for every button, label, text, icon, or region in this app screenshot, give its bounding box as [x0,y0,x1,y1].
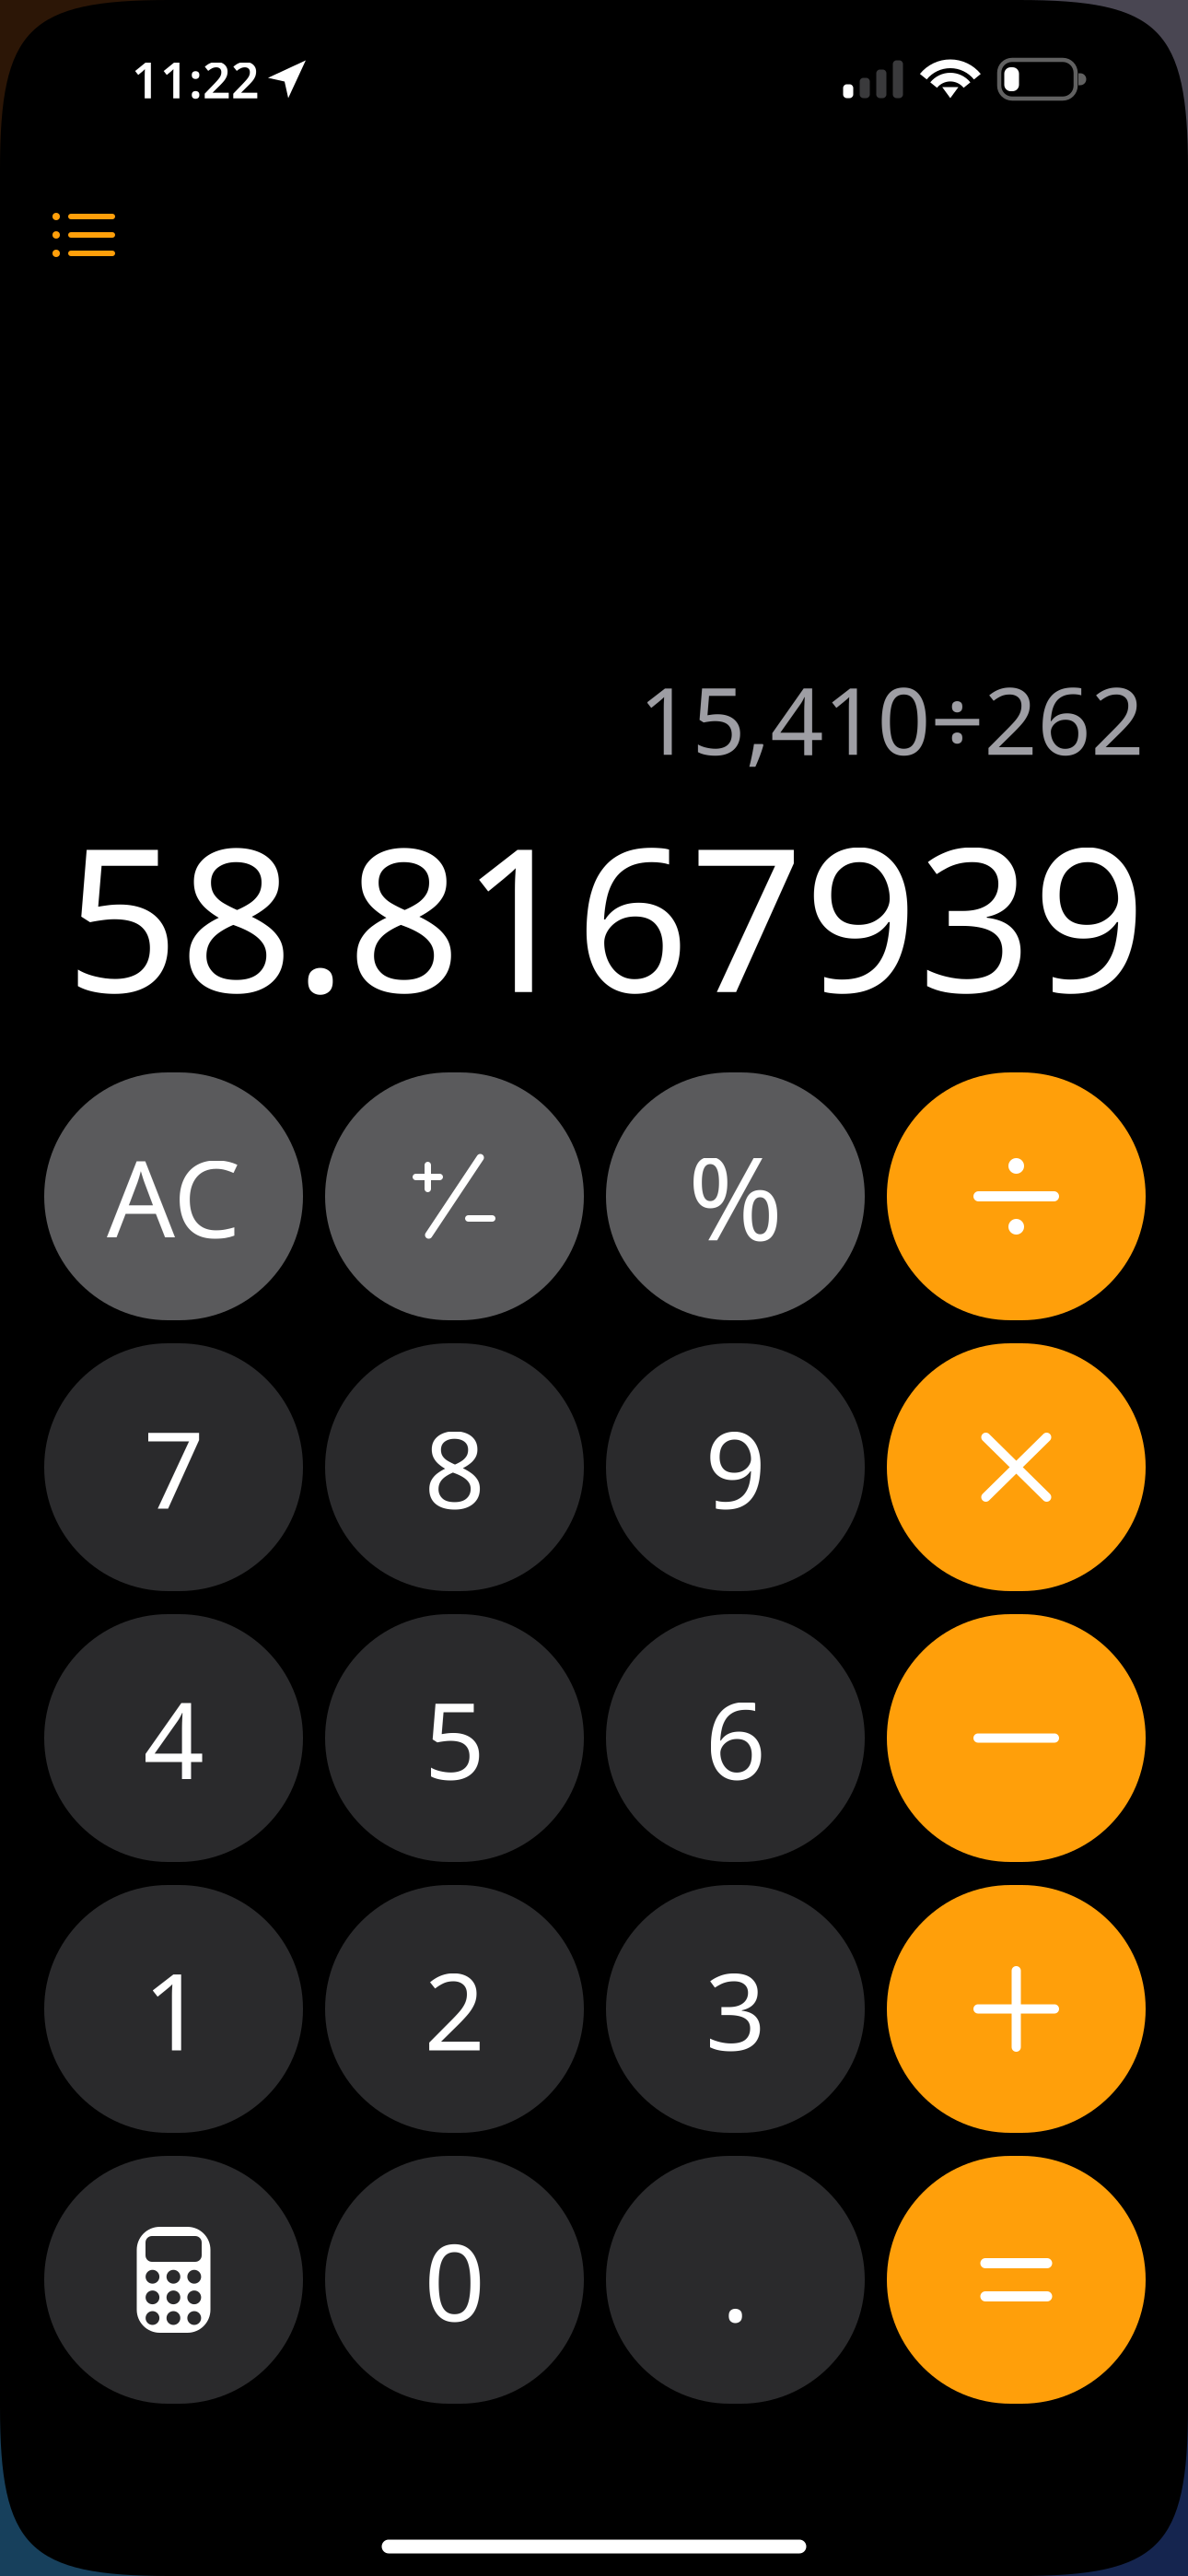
button[interactable]: % [606,1072,865,1320]
staticText: 15,410÷262 [639,657,1144,781]
button[interactable]: Calculator [44,2156,303,2404]
button[interactable]: Divide [887,1072,1146,1320]
button[interactable]: Multiply [887,1343,1146,1591]
button[interactable]: 5 [325,1614,584,1862]
button[interactable]: 9 [606,1343,865,1591]
button[interactable]: Plus [887,1885,1146,2133]
button[interactable]: 3 [606,1885,865,2133]
button[interactable]: 2 [325,1885,584,2133]
staticText: 4 [143,1667,204,1809]
staticText: 11:22 [132,47,260,112]
button[interactable]: AC [44,1072,303,1320]
staticText: 3 [705,1938,766,2080]
staticText: 6 [705,1667,766,1809]
button[interactable]: 4 [44,1614,303,1862]
staticText: 1 [143,1938,204,2080]
staticText: 0 [424,2209,485,2351]
button[interactable]: . [606,2156,865,2404]
staticText: 58.8167939 [65,783,1147,1047]
staticText: . [721,2209,750,2351]
staticText: % [688,1121,783,1272]
button[interactable]: Minus [887,1614,1146,1862]
staticText: 9 [705,1396,766,1538]
button[interactable]: 7 [44,1343,303,1591]
button[interactable]: 8 [325,1343,584,1591]
button[interactable]: 6 [606,1614,865,1862]
button[interactable]: Plus Minus [325,1072,584,1320]
staticText: AC [107,1125,240,1267]
button[interactable]: 0 [325,2156,584,2404]
button[interactable]: 1 [44,1885,303,2133]
staticText: 2 [424,1938,485,2080]
button[interactable]: History [34,193,134,277]
staticText: 8 [424,1396,485,1538]
staticText: 5 [424,1667,485,1809]
staticText: 7 [143,1396,204,1538]
button[interactable]: Equals [887,2156,1146,2404]
